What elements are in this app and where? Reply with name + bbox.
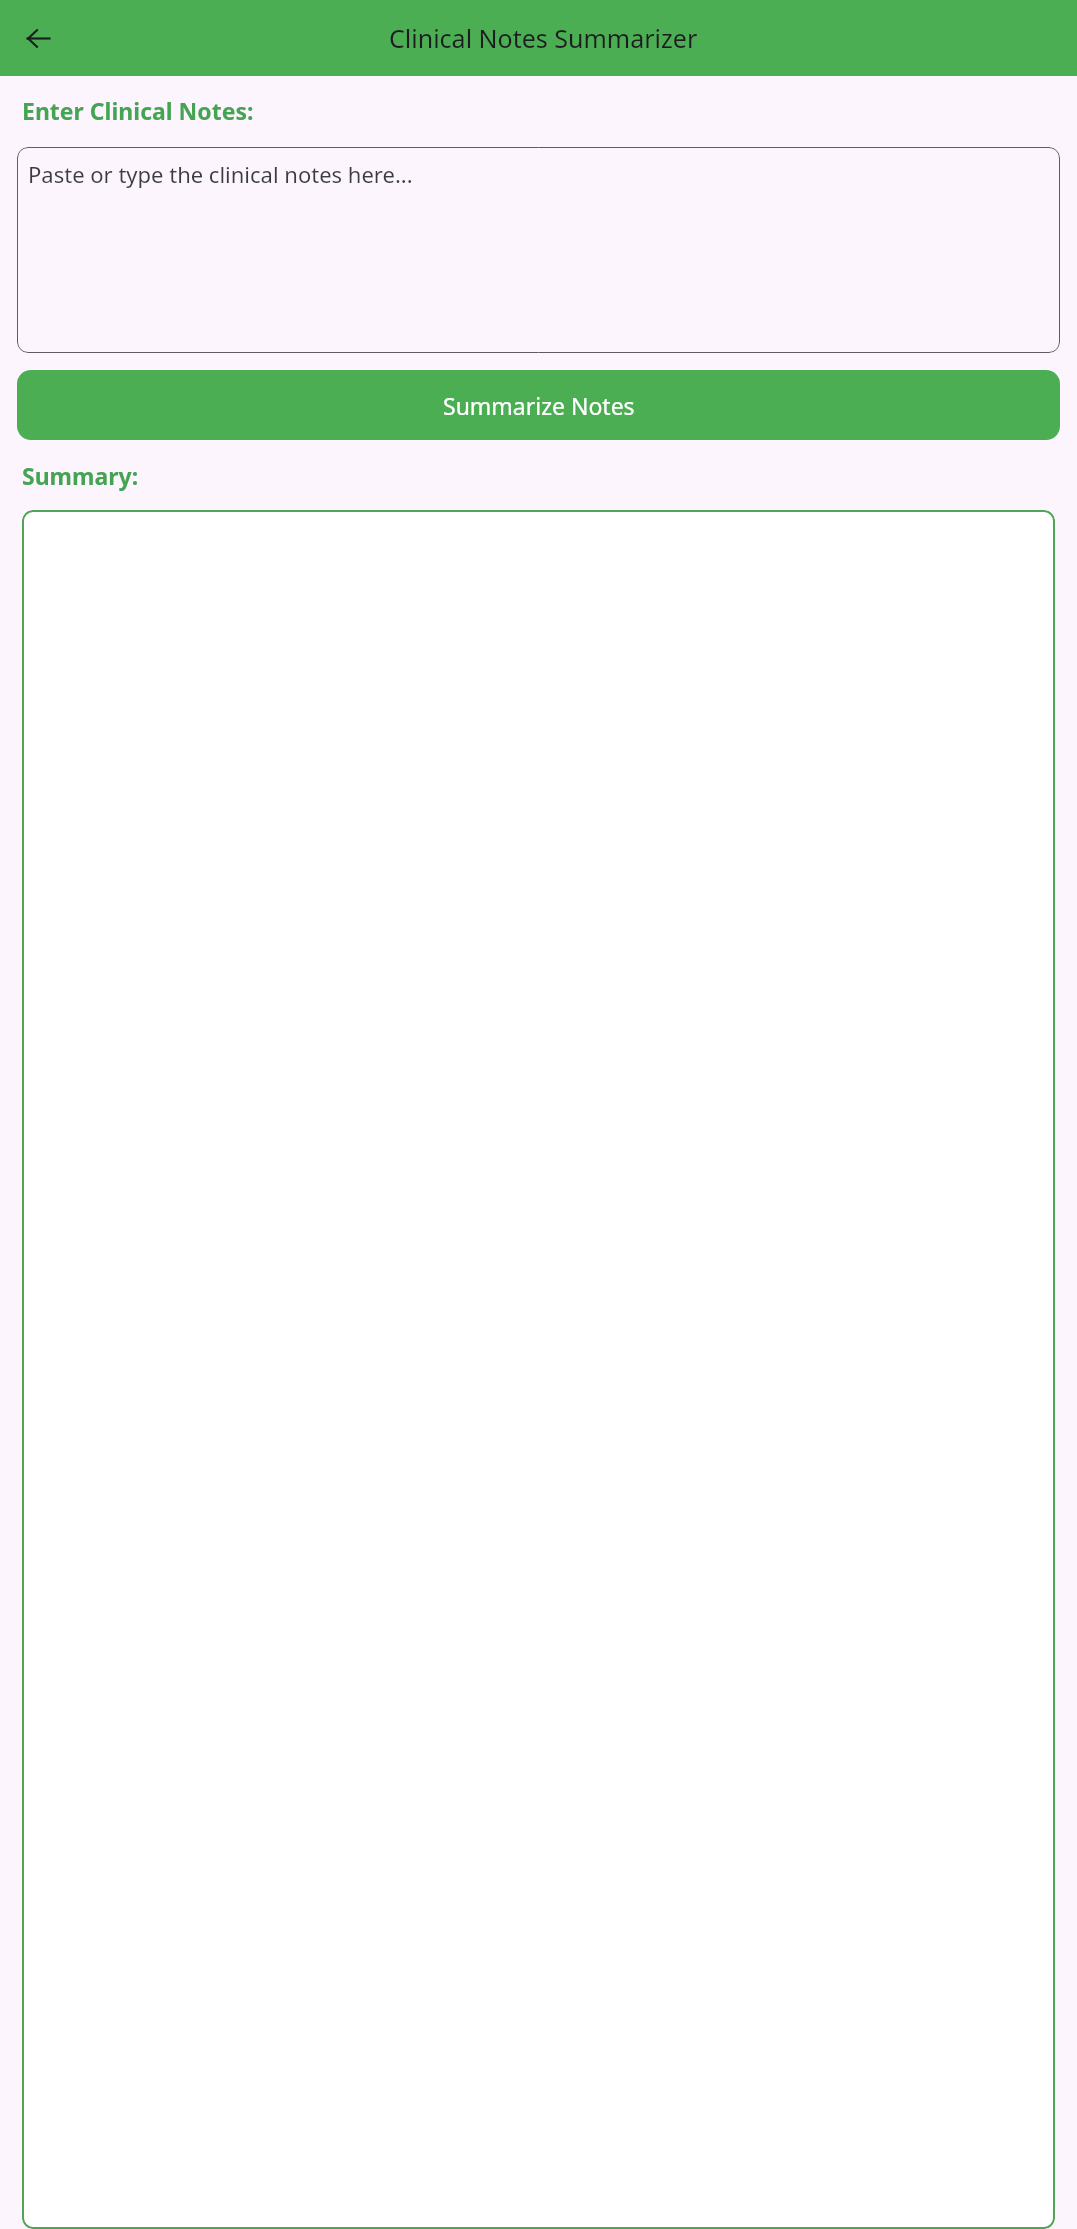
staticText: Clinical Notes Summarizer <box>389 21 698 55</box>
button[interactable] <box>22 510 1055 2229</box>
button[interactable]: Back <box>14 14 62 62</box>
staticText: Summarize Notes <box>443 390 635 421</box>
staticText: Paste or type the clinical notes here... <box>28 159 413 189</box>
staticText: Enter Clinical Notes: <box>22 95 254 126</box>
button[interactable]: Summarize Notes <box>17 370 1060 440</box>
staticText: Summary: <box>22 460 139 491</box>
button[interactable]: Paste or type the clinical notes here... <box>17 147 1060 353</box>
